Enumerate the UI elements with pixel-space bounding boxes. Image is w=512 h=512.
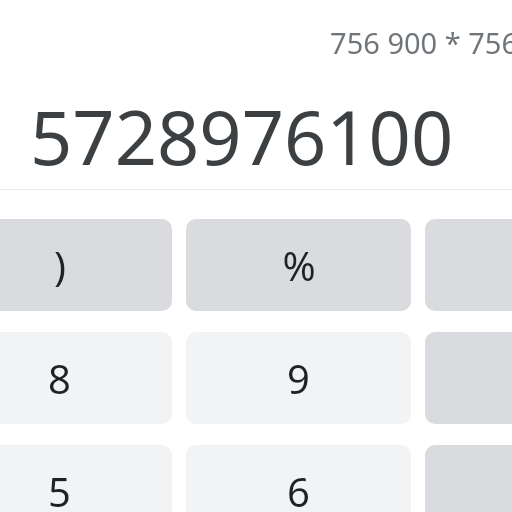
staticText: ) (54, 238, 66, 292)
button[interactable]: Close parenthesis (0, 219, 172, 311)
button[interactable]: 9 (186, 332, 411, 424)
staticText: % (282, 238, 316, 292)
button[interactable]: 8 (0, 332, 172, 424)
staticText: 5 (48, 464, 71, 512)
button[interactable]: 6 (186, 445, 411, 512)
staticText: 5728976100 (30, 86, 454, 172)
staticText: 8 (48, 351, 71, 405)
button[interactable]: Percent (186, 219, 411, 311)
staticText: 756 900 * 756 (330, 23, 512, 62)
button[interactable]: 5 (0, 445, 172, 512)
staticText: 6 (287, 464, 310, 512)
staticText: 9 (287, 351, 310, 405)
